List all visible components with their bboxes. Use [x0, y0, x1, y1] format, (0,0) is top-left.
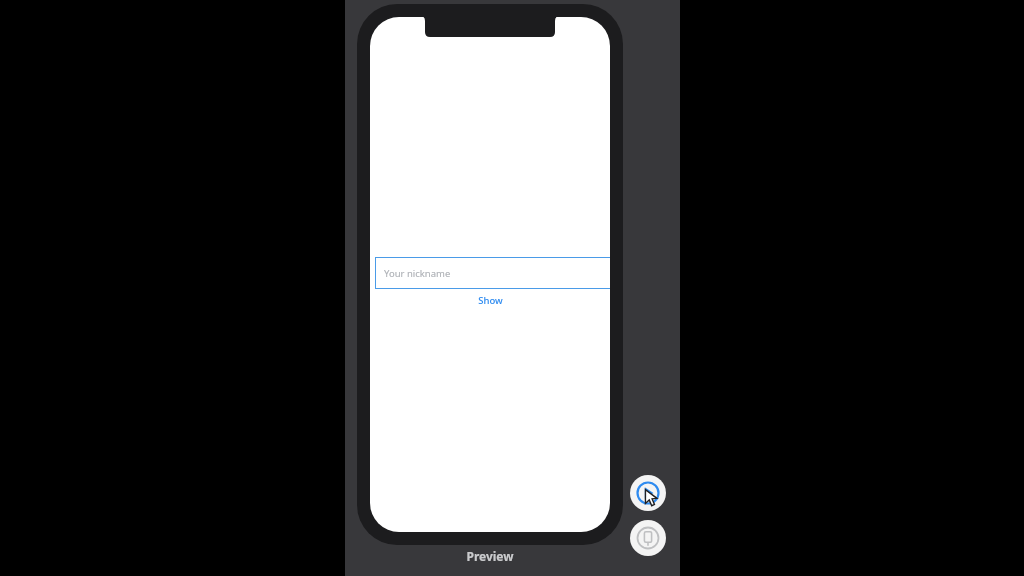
- button[interactable]: Run preview: [630, 475, 666, 511]
- button[interactable]: Device settings: [630, 520, 666, 556]
- button[interactable]: Show: [468, 292, 513, 309]
- staticText: Show: [478, 294, 503, 307]
- button[interactable]: Your nickname: [375, 257, 610, 289]
- staticText: Preview: [466, 548, 514, 564]
- staticText: Your nickname: [384, 267, 451, 280]
